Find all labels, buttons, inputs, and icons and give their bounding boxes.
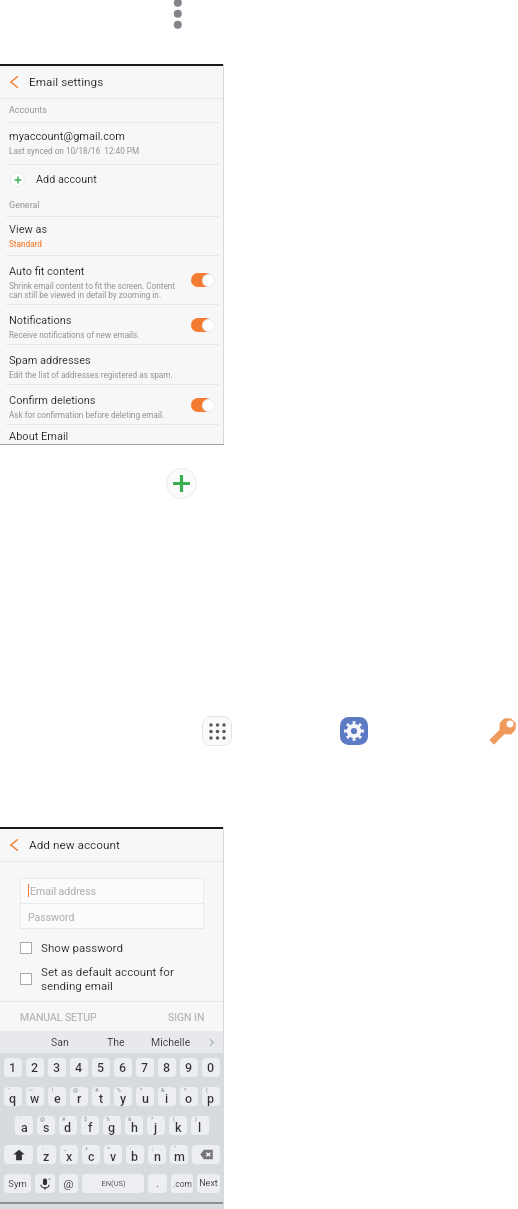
staticText: '	[20, 1116, 21, 1122]
staticText: Spam addresses	[9, 354, 91, 367]
staticText: Accounts	[9, 105, 47, 116]
button[interactable]: Add account	[166, 468, 197, 499]
button[interactable]: ^	[136, 1087, 154, 1106]
staticText: Add account	[36, 173, 97, 186]
button[interactable]: !	[48, 1087, 66, 1106]
button[interactable]: .	[148, 1174, 167, 1193]
staticText: ~	[29, 1087, 33, 1093]
button[interactable]: .com	[171, 1174, 193, 1193]
button[interactable]: #	[92, 1087, 110, 1106]
staticText: Password	[28, 911, 75, 923]
button[interactable]: MANUAL SETUP	[0, 1007, 101, 1027]
button[interactable]: Confirm deletions	[0, 385, 224, 424]
staticText: q	[9, 1091, 17, 1106]
button[interactable]: SIGN IN	[164, 1007, 224, 1027]
button[interactable]: 8	[158, 1058, 176, 1077]
staticText: &	[161, 1087, 165, 1093]
button[interactable]: :	[126, 1145, 144, 1164]
button[interactable]: $	[81, 1116, 99, 1135]
button[interactable]: Sym	[4, 1174, 31, 1193]
button[interactable]: '	[15, 1116, 33, 1135]
button[interactable]: 9	[180, 1058, 198, 1077]
button[interactable]: Next	[197, 1174, 220, 1193]
button[interactable]: -	[37, 1145, 56, 1164]
staticText: w	[30, 1091, 40, 1106]
button[interactable]: 4	[70, 1058, 88, 1077]
button[interactable]: Add account	[0, 165, 224, 194]
button[interactable]: ~	[26, 1087, 44, 1106]
button[interactable]: 2	[26, 1058, 44, 1077]
staticText: @	[73, 1087, 78, 1093]
button[interactable]: myaccount@gmail.com	[0, 123, 224, 164]
button[interactable]: @	[70, 1087, 88, 1106]
button[interactable]: )	[191, 1116, 209, 1135]
button[interactable]: Notifications	[0, 305, 224, 344]
button[interactable]: ;	[148, 1145, 166, 1164]
button[interactable]: Show password	[0, 935, 224, 960]
staticText: o	[185, 1091, 193, 1106]
button[interactable]: Shift	[4, 1145, 33, 1164]
button[interactable]: Password	[20, 904, 204, 929]
button[interactable]: "	[170, 1145, 188, 1164]
button[interactable]: (	[202, 1087, 220, 1106]
button[interactable]: Settings	[340, 717, 368, 745]
button[interactable]: @	[37, 1116, 55, 1135]
staticText: t	[99, 1091, 104, 1106]
button[interactable]: (	[169, 1116, 187, 1135]
button[interactable]: #	[59, 1116, 77, 1135]
button[interactable]: 5	[92, 1058, 110, 1077]
button[interactable]: The	[88, 1031, 143, 1053]
staticText: Confirm deletions	[9, 394, 96, 407]
button[interactable]: Apps	[202, 716, 232, 746]
staticText: u	[142, 1091, 149, 1106]
button[interactable]: Voice input	[35, 1174, 55, 1193]
button[interactable]: Back	[0, 66, 224, 98]
button[interactable]: View as	[0, 217, 224, 255]
button[interactable]: 0	[202, 1058, 220, 1077]
button[interactable]: &	[158, 1087, 176, 1106]
staticText: Last synced on 10/18/16 12:40 PM	[9, 146, 140, 156]
staticText: .	[156, 1178, 159, 1190]
button[interactable]: Backspace	[192, 1145, 220, 1164]
button[interactable]: *	[180, 1087, 198, 1106]
staticText: Notifications	[9, 314, 72, 327]
staticText: ^	[140, 1087, 143, 1093]
button[interactable]: Toggle Notifications	[191, 318, 215, 332]
button[interactable]: @	[59, 1174, 78, 1193]
staticText: 7	[141, 1060, 149, 1075]
button[interactable]: San	[31, 1031, 88, 1053]
staticText: @	[40, 1116, 45, 1122]
button[interactable]: Toggle Auto fit content	[191, 273, 215, 287]
button[interactable]: +	[82, 1145, 100, 1164]
staticText: ;	[152, 1145, 154, 1151]
button[interactable]: 6	[114, 1058, 132, 1077]
button[interactable]: Set as default account for sending email	[0, 960, 224, 998]
button[interactable]: 3	[48, 1058, 66, 1077]
button[interactable]: More suggestions	[198, 1031, 224, 1053]
staticText: s	[43, 1120, 50, 1135]
button[interactable]: Spam addresses	[0, 345, 224, 384]
button[interactable]: 7	[136, 1058, 154, 1077]
button[interactable]: =	[104, 1145, 122, 1164]
button[interactable]: Toggle Confirm deletions	[191, 398, 215, 412]
button[interactable]: &	[125, 1116, 143, 1135]
button[interactable]: Back	[0, 829, 224, 861]
button[interactable]: About Email	[0, 425, 224, 444]
staticText: $	[84, 1116, 88, 1122]
button[interactable]: Michelle	[143, 1031, 198, 1053]
button[interactable]: Password	[488, 716, 518, 746]
button[interactable]: Email address	[20, 878, 204, 903]
button[interactable]: %	[114, 1087, 132, 1106]
staticText: Ask for confirmation before deleting ema…	[9, 410, 165, 420]
staticText: 0	[207, 1060, 215, 1075]
staticText: m	[174, 1149, 185, 1164]
button[interactable]: *	[147, 1116, 165, 1135]
button[interactable]: Auto fit content	[0, 256, 224, 304]
button[interactable]: _	[60, 1145, 78, 1164]
staticText: c	[88, 1149, 95, 1164]
button[interactable]: %	[103, 1116, 121, 1135]
button[interactable]: `	[4, 1087, 22, 1106]
button[interactable]: 1	[4, 1058, 22, 1077]
button[interactable]: EN(US)	[82, 1174, 144, 1193]
staticText: i	[165, 1091, 169, 1106]
